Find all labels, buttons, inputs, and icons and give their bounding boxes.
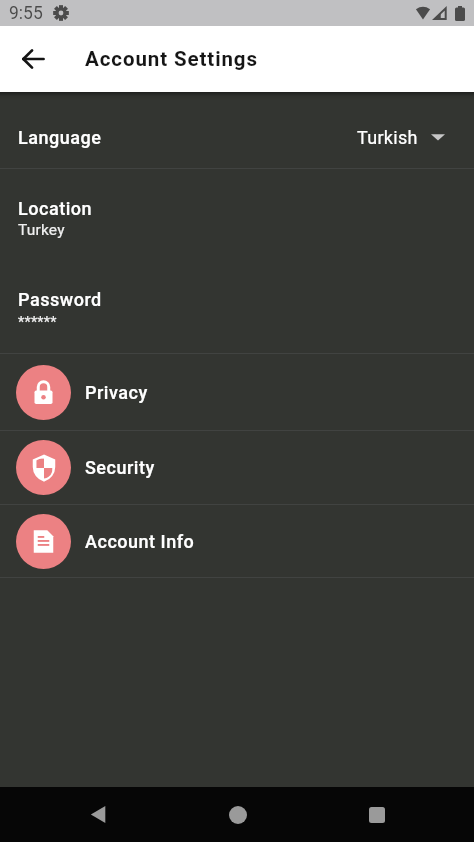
button[interactable]: Privacy: [0, 354, 474, 430]
button[interactable]: Location: [0, 169, 474, 239]
staticText: Location: [18, 198, 93, 219]
staticText: 9:55: [9, 3, 43, 24]
button[interactable]: Password: [0, 239, 474, 353]
staticText: Privacy: [85, 382, 148, 403]
button[interactable]: [349, 787, 404, 842]
button[interactable]: Language: [0, 106, 474, 168]
staticText: Account Info: [85, 531, 195, 552]
button[interactable]: Account Info: [0, 505, 474, 577]
button[interactable]: [210, 787, 265, 842]
staticText: Account Settings: [85, 47, 258, 71]
staticText: ******: [18, 314, 57, 331]
staticText: Password: [18, 289, 102, 310]
staticText: Security: [85, 457, 155, 478]
button[interactable]: [71, 787, 126, 842]
button[interactable]: Security: [0, 431, 474, 504]
staticText: Language: [18, 127, 102, 148]
button[interactable]: [5, 31, 61, 87]
staticText: Turkey: [18, 221, 65, 239]
staticText: Turkish: [357, 127, 418, 148]
